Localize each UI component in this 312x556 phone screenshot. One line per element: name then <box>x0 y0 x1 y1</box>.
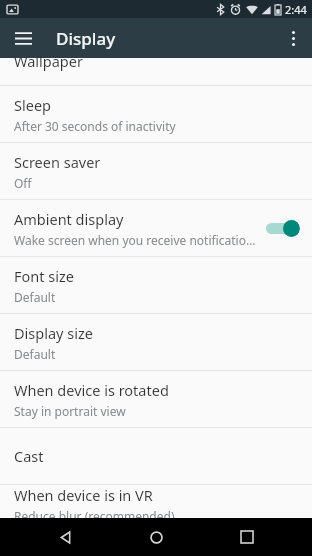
button[interactable]: Home <box>130 518 182 556</box>
button[interactable]: Back <box>39 518 91 556</box>
staticText: Sleep <box>14 95 51 115</box>
button[interactable]: Open navigation drawer <box>8 23 38 53</box>
staticText: When device is rotated <box>14 380 169 400</box>
button[interactable]: Wallpaper <box>0 58 312 85</box>
staticText: When device is in VR <box>14 485 153 505</box>
button[interactable]: Ambient display toggle, on <box>264 217 300 239</box>
button[interactable]: Ambient display <box>0 200 312 256</box>
button[interactable]: When device is in VR <box>0 485 312 518</box>
staticText: 2:44 <box>285 2 307 17</box>
staticText: Off <box>14 175 32 191</box>
staticText: Reduce blur (recommended) <box>14 508 175 518</box>
staticText: Font size <box>14 266 74 286</box>
staticText: Stay in portrait view <box>14 403 126 419</box>
staticText: Display size <box>14 323 93 343</box>
staticText: Ambient display <box>14 209 124 229</box>
staticText: Wake screen when you receive notificatio… <box>14 232 256 248</box>
button[interactable]: Screen saver <box>0 143 312 199</box>
button[interactable]: Recent apps <box>221 518 273 556</box>
staticText: Cast <box>14 446 44 466</box>
staticText: Default <box>14 289 56 305</box>
staticText: Screen saver <box>14 152 101 172</box>
button[interactable]: More options <box>277 22 309 54</box>
staticText: After 30 seconds of inactivity <box>14 118 176 134</box>
button[interactable]: Cast <box>0 428 312 484</box>
staticText: Wallpaper <box>14 51 83 71</box>
button[interactable]: When device is rotated <box>0 371 312 427</box>
staticText: Display <box>56 27 116 50</box>
button[interactable]: Font size <box>0 257 312 313</box>
staticText: Default <box>14 346 56 362</box>
button[interactable]: Sleep <box>0 86 312 142</box>
button[interactable]: Display size <box>0 314 312 370</box>
